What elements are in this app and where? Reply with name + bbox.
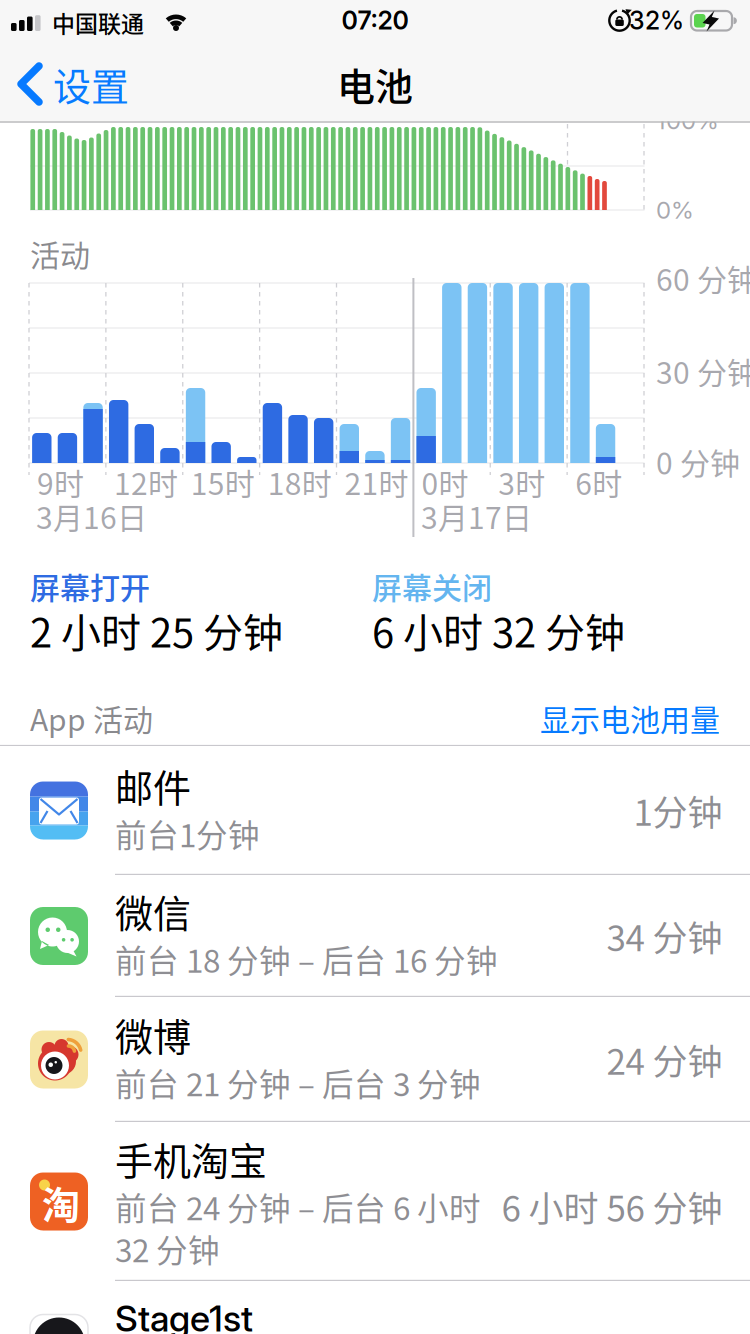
staticText: 12时 [114, 460, 178, 504]
staticText: 前台 21 分钟 – 后台 3 分钟 [115, 1060, 481, 1105]
staticText: 3月17日 [421, 494, 532, 538]
staticText: 淘 [42, 1175, 80, 1230]
staticText: 3时 [498, 460, 545, 504]
button[interactable]: 设置 [17, 62, 129, 106]
button[interactable]: Stage1st [0, 1281, 750, 1334]
staticText: 32 分钟 [115, 1226, 220, 1271]
staticText: 屏幕关闭 [372, 564, 492, 608]
staticText: 60 分钟 [656, 256, 750, 300]
button[interactable]: 淘 [0, 1122, 750, 1281]
staticText: 前台 24 分钟 – 后台 6 小时 [115, 1184, 481, 1229]
button[interactable]: 显示电池用量 [420, 696, 720, 740]
staticText: 21时 [344, 460, 408, 504]
staticText: 100% [656, 106, 719, 135]
staticText: 微信 [115, 883, 191, 938]
staticText: 34 分钟 [606, 911, 722, 961]
staticText: 6 小时 32 分钟 [372, 601, 625, 659]
staticText: 手机淘宝 [115, 1131, 267, 1186]
staticText: 1分钟 [633, 785, 722, 836]
staticText: 0时 [421, 460, 468, 504]
staticText: 15时 [191, 460, 255, 504]
staticText: 3月16日 [36, 494, 147, 538]
staticText: 中国联通 [52, 6, 144, 39]
staticText: 0 分钟 [656, 440, 740, 483]
staticText: 30 分钟 [656, 349, 750, 393]
staticText: 设置 [53, 56, 129, 111]
staticText: 0% [656, 195, 694, 224]
button[interactable]: 邮件 [0, 746, 750, 875]
button[interactable]: 微博 [0, 997, 750, 1122]
staticText: 24 分钟 [606, 1034, 722, 1085]
staticText: 屏幕打开 [30, 564, 150, 608]
staticText: App 活动 [30, 696, 153, 740]
staticText: Stage1st [115, 1297, 253, 1334]
staticText: 电池 [337, 56, 413, 111]
staticText: 6时 [575, 460, 622, 504]
staticText: 前台 18 分钟 – 后台 16 分钟 [115, 936, 498, 982]
staticText: 07:20 [341, 5, 408, 36]
staticText: 显示电池用量 [540, 696, 720, 740]
staticText: 邮件 [115, 758, 191, 813]
button[interactable]: 微信 [0, 875, 750, 997]
staticText: 活动 [30, 232, 90, 275]
staticText: 6 小时 56 分钟 [501, 1181, 722, 1232]
staticText: 2 小时 25 分钟 [30, 601, 283, 659]
staticText: 前台1分钟 [115, 811, 260, 856]
staticText: 18时 [268, 460, 332, 504]
staticText: 微博 [115, 1007, 191, 1062]
staticText: 9时 [37, 460, 84, 504]
staticText: 32% [629, 5, 684, 36]
